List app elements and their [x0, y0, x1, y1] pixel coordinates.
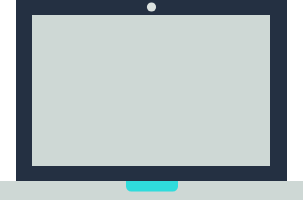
button[interactable]: Laptop computer illustration	[0, 0, 303, 200]
